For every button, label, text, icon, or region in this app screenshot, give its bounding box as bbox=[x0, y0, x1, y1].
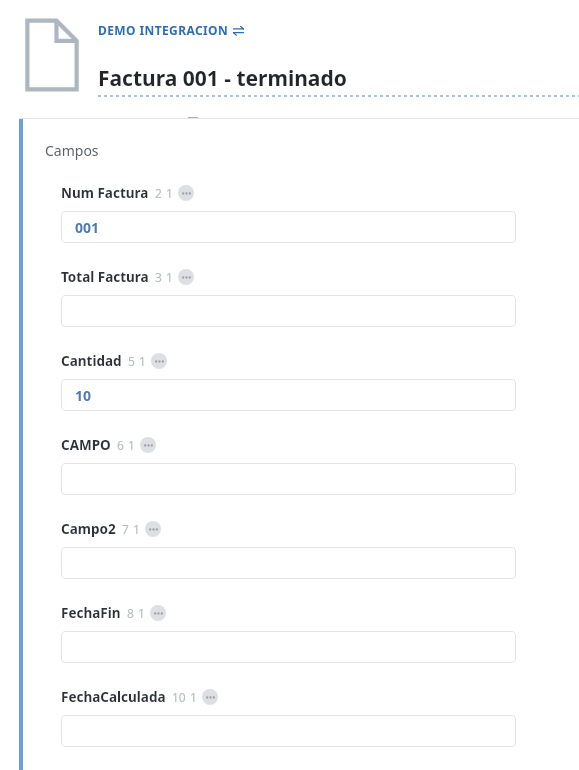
staticText: Num Factura bbox=[61, 184, 149, 202]
button[interactable]: More options bbox=[151, 353, 167, 369]
button[interactable]: More options bbox=[150, 605, 166, 621]
staticText: Total Factura bbox=[61, 268, 149, 286]
button[interactable]: More options bbox=[140, 437, 156, 453]
staticText: 1 bbox=[166, 185, 173, 201]
staticText: 8 bbox=[127, 605, 134, 621]
staticText: 3 bbox=[155, 269, 162, 285]
staticText: 10 bbox=[172, 689, 186, 705]
staticText: CAMPO bbox=[61, 436, 111, 454]
button[interactable]: More options bbox=[145, 521, 161, 537]
staticText: Campo2 bbox=[61, 520, 116, 538]
button[interactable] bbox=[61, 547, 516, 579]
button[interactable]: DEMO INTEGRACION bbox=[98, 22, 229, 38]
button[interactable] bbox=[61, 463, 516, 495]
staticText: 1 bbox=[166, 269, 173, 285]
button[interactable]: More options bbox=[178, 185, 194, 201]
staticText: 1 bbox=[139, 353, 146, 369]
button[interactable]: More options bbox=[202, 689, 218, 705]
staticText: 1 bbox=[128, 437, 135, 453]
staticText: 1 bbox=[190, 689, 197, 705]
staticText: 7 bbox=[122, 521, 129, 537]
staticText: 5 bbox=[128, 353, 135, 369]
button[interactable]: 001 bbox=[61, 211, 516, 243]
staticText: FechaFin bbox=[61, 604, 121, 622]
button[interactable] bbox=[61, 631, 516, 663]
staticText: 1 bbox=[133, 521, 140, 537]
staticText: Campos bbox=[45, 141, 99, 160]
button[interactable]: Factura 001 - terminado bbox=[98, 64, 579, 97]
button[interactable]: More options bbox=[178, 269, 194, 285]
staticText: Cantidad bbox=[61, 352, 122, 370]
staticText: 2 bbox=[155, 185, 162, 201]
staticText: 001 bbox=[75, 218, 100, 237]
staticText: 10 bbox=[75, 386, 92, 405]
staticText: Factura 001 - terminado bbox=[98, 64, 347, 93]
staticText: FechaCalculada bbox=[61, 688, 166, 706]
staticText: 1 bbox=[138, 605, 145, 621]
button[interactable]: 10 bbox=[61, 379, 516, 411]
button[interactable] bbox=[61, 715, 516, 747]
staticText: 6 bbox=[117, 437, 124, 453]
button[interactable] bbox=[61, 295, 516, 327]
